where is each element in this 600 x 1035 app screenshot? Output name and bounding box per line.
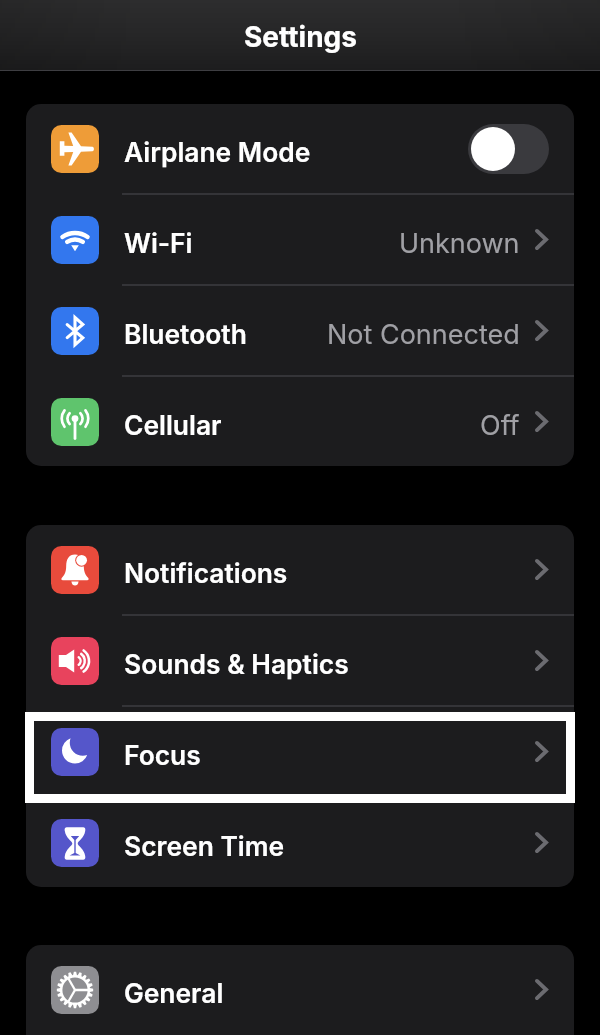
button[interactable]: Screen Time bbox=[26, 798, 574, 887]
other: Open Notifications bbox=[535, 559, 548, 580]
staticText: Not Connected bbox=[327, 318, 520, 351]
button[interactable]: Notifications bbox=[26, 525, 574, 614]
button[interactable]: Airplane Mode toggle bbox=[468, 124, 549, 174]
staticText: Screen Time bbox=[124, 830, 285, 862]
other: Open Wi-Fi bbox=[535, 229, 548, 250]
other: Open Cellular bbox=[535, 411, 548, 432]
staticText: Bluetooth bbox=[124, 318, 247, 350]
staticText: Notifications bbox=[124, 557, 288, 589]
other: Open Sounds & Haptics bbox=[535, 650, 548, 671]
staticText: Airplane Mode bbox=[124, 136, 311, 168]
button[interactable]: Cellular bbox=[26, 377, 574, 466]
staticText: Unknown bbox=[399, 227, 520, 260]
button[interactable]: Bluetooth bbox=[26, 286, 574, 375]
staticText: Sounds & Haptics bbox=[124, 648, 349, 680]
staticText: Wi-Fi bbox=[124, 227, 193, 259]
other: Open General bbox=[535, 979, 548, 1000]
staticText: Settings bbox=[244, 20, 357, 54]
button[interactable]: Sounds & Haptics bbox=[26, 616, 574, 705]
staticText: Cellular bbox=[124, 409, 222, 441]
staticText: General bbox=[124, 977, 224, 1009]
other: Open Focus bbox=[535, 741, 548, 762]
button[interactable]: Focus bbox=[26, 707, 574, 796]
other: Open Bluetooth bbox=[535, 320, 548, 341]
staticText: Off bbox=[480, 409, 520, 442]
staticText: Focus bbox=[124, 739, 201, 771]
button[interactable]: Wi-Fi bbox=[26, 195, 574, 284]
other: Open Screen Time bbox=[535, 832, 548, 853]
button[interactable]: Airplane Mode bbox=[26, 104, 574, 193]
button[interactable]: General bbox=[26, 945, 574, 1034]
